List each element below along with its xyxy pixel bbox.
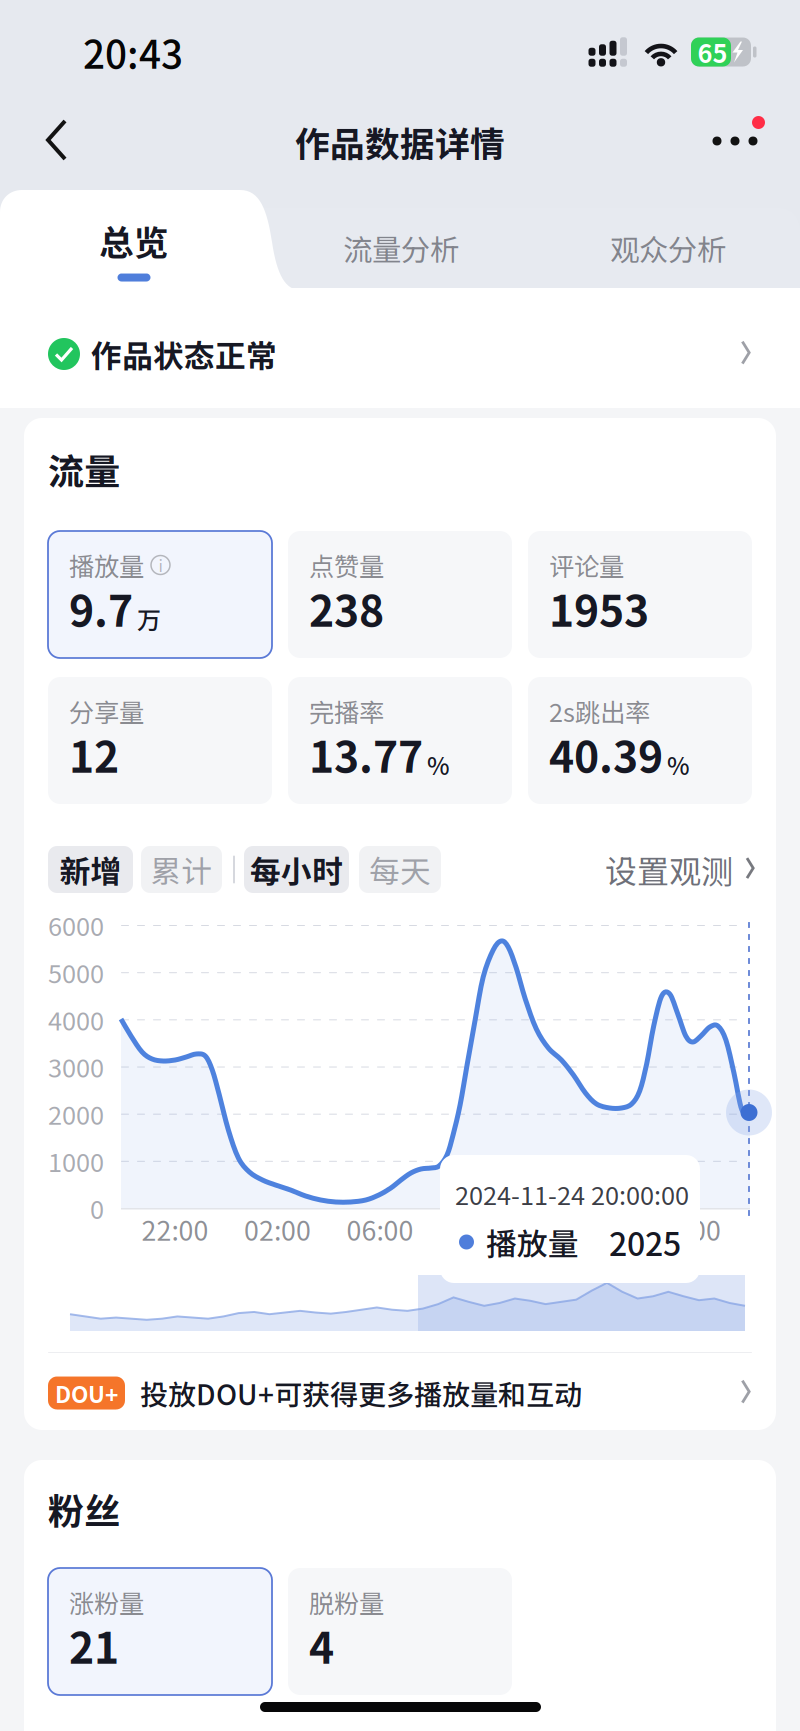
staticText: 总览 xyxy=(99,215,169,266)
staticText: 3000 xyxy=(48,1048,104,1085)
staticText: 40.39 xyxy=(549,723,663,785)
staticText: 评论量 xyxy=(549,547,624,583)
staticText: 作品数据详情 xyxy=(295,117,505,167)
button[interactable]: 流量分析 xyxy=(286,208,516,288)
staticText: 238 xyxy=(309,577,384,639)
staticText: 4 xyxy=(309,1614,334,1676)
staticText: DOU+ xyxy=(55,1377,118,1409)
button[interactable]: 点赞量 xyxy=(288,531,512,658)
staticText: 6000 xyxy=(48,907,104,943)
button[interactable]: 观众分析 xyxy=(553,208,783,288)
staticText: 2000 xyxy=(48,1095,104,1132)
staticText: 每天 xyxy=(369,847,431,892)
staticText: 65 xyxy=(697,34,727,70)
staticText: 0 xyxy=(90,1190,104,1226)
staticText: 播放量 xyxy=(486,1220,579,1264)
button[interactable]: 评论量 xyxy=(528,531,752,658)
staticText: 1953 xyxy=(549,577,649,639)
staticText: 脱粉量 xyxy=(309,1584,384,1620)
staticText: 13.77 xyxy=(309,723,423,785)
staticText: 2025 xyxy=(609,1219,681,1265)
staticText: 14:00 xyxy=(551,1210,618,1248)
staticText: 2s跳出率 xyxy=(549,693,650,729)
button[interactable]: 作品状态正常 xyxy=(0,299,704,409)
button[interactable]: 累计 xyxy=(141,846,222,893)
button[interactable]: 每天 xyxy=(359,846,441,893)
button[interactable]: 脱粉量 xyxy=(288,1568,512,1695)
staticText: i xyxy=(158,553,162,577)
staticText: 涨粉量 xyxy=(69,1584,144,1620)
staticText: 2024-11-24 20:00:00 xyxy=(455,1176,689,1212)
staticText: 每小时 xyxy=(250,847,343,892)
staticText: 22:00 xyxy=(141,1210,208,1248)
button[interactable]: 完播率 xyxy=(288,677,512,804)
staticText: 完播率 xyxy=(309,693,384,729)
staticText: 流量分析 xyxy=(343,227,459,269)
button[interactable]: 总览 xyxy=(14,197,254,305)
button[interactable]: DOU+ xyxy=(24,1353,728,1433)
button[interactable]: 播放量 xyxy=(48,531,272,658)
staticText: 投放DOU+可获得更多播放量和互动 xyxy=(140,1373,582,1413)
staticText: % xyxy=(667,747,690,782)
button[interactable]: Back xyxy=(24,108,90,174)
staticText: 06:00 xyxy=(346,1210,413,1248)
staticText: 4000 xyxy=(48,1001,104,1038)
staticText: 12 xyxy=(69,723,119,785)
staticText: 5000 xyxy=(48,954,104,990)
staticText: 播放量 xyxy=(69,547,144,583)
staticText: 21 xyxy=(69,1614,119,1676)
staticText: 分享量 xyxy=(69,693,144,729)
staticText: 设置观测 xyxy=(605,846,733,893)
staticText: 9.7 xyxy=(69,577,133,639)
staticText: 作品状态正常 xyxy=(91,332,277,376)
staticText: 02:00 xyxy=(244,1210,311,1248)
button[interactable]: 涨粉量 xyxy=(48,1568,272,1695)
staticText: 观众分析 xyxy=(610,227,726,269)
staticText: 1000 xyxy=(48,1142,104,1179)
staticText: 10:00 xyxy=(449,1210,516,1248)
staticText: 粉丝 xyxy=(48,1483,120,1535)
button[interactable]: 分享量 xyxy=(48,677,272,804)
button[interactable]: 2s跳出率 xyxy=(528,677,752,804)
staticText: 流量 xyxy=(48,443,120,495)
staticText: 18:00 xyxy=(654,1210,721,1248)
staticText: % xyxy=(427,747,450,782)
staticText: 点赞量 xyxy=(309,547,384,583)
staticText: 20:43 xyxy=(83,24,183,80)
staticText: 累计 xyxy=(150,847,212,892)
button[interactable]: More options xyxy=(702,108,768,174)
button[interactable]: 每小时 xyxy=(244,846,349,893)
staticText: 新增 xyxy=(59,847,121,892)
button[interactable]: 设置观测 xyxy=(605,846,765,893)
staticText: 万 xyxy=(137,601,161,636)
button[interactable]: 新增 xyxy=(48,846,133,893)
